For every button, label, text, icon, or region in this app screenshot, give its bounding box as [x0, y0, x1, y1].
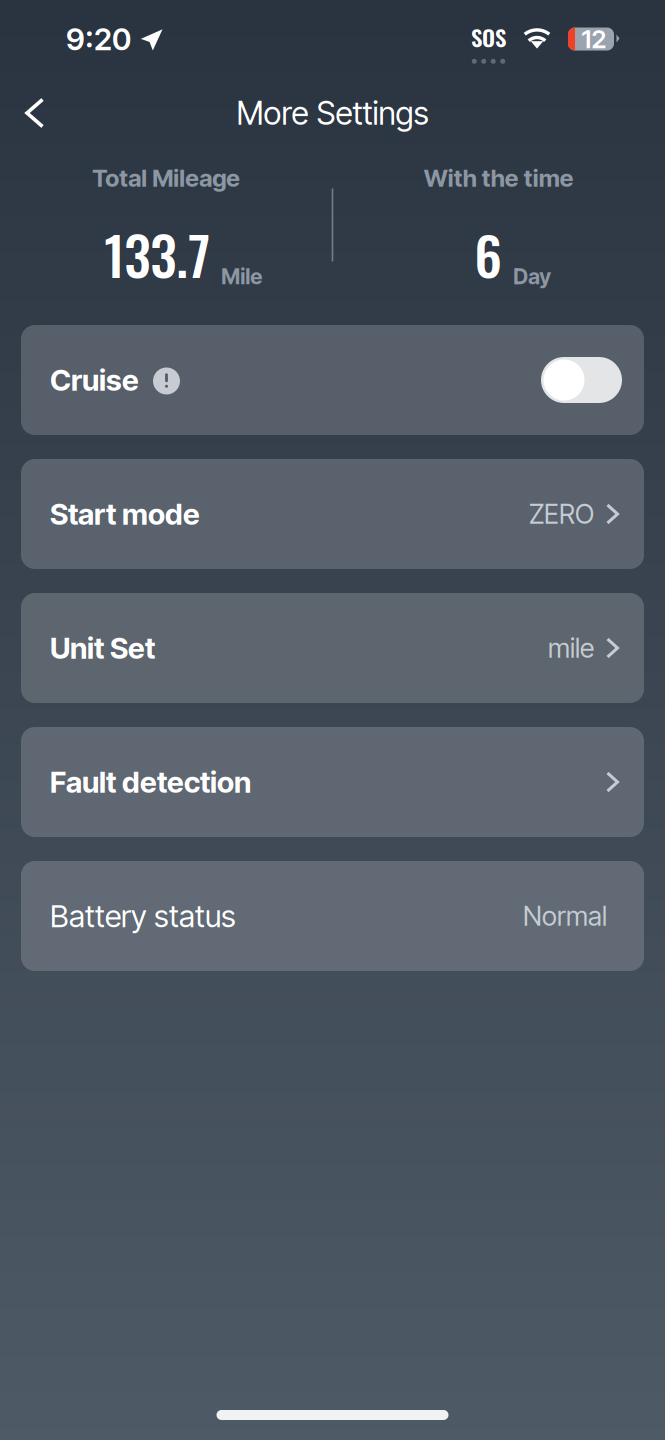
staticText: Unit Set	[50, 630, 155, 666]
staticText: 133.7	[104, 214, 210, 293]
staticText: 12	[581, 24, 606, 54]
staticText: 6	[474, 214, 502, 293]
staticText: ZERO	[529, 498, 594, 530]
staticText: With the time	[424, 163, 574, 192]
button[interactable]: Unit Set	[21, 593, 644, 703]
staticText: Cruise	[50, 362, 139, 398]
button[interactable]: Back	[4, 83, 66, 143]
staticText: Mile	[221, 264, 262, 289]
staticText: Start mode	[50, 496, 200, 532]
button[interactable]: Cruise	[21, 325, 644, 435]
staticText: Normal	[523, 900, 607, 932]
staticText: SOS	[471, 20, 506, 54]
staticText: Fault detection	[50, 764, 251, 800]
staticText: More Settings	[236, 94, 428, 132]
staticText: mile	[548, 632, 594, 664]
button[interactable]: Start mode	[21, 459, 644, 569]
staticText: 9:20	[66, 20, 131, 57]
staticText: Total Mileage	[92, 163, 240, 192]
staticText: Day	[513, 264, 551, 289]
button[interactable]: Fault detection	[21, 727, 644, 837]
button[interactable]: Battery status	[21, 861, 644, 971]
staticText: Battery status	[50, 897, 236, 934]
